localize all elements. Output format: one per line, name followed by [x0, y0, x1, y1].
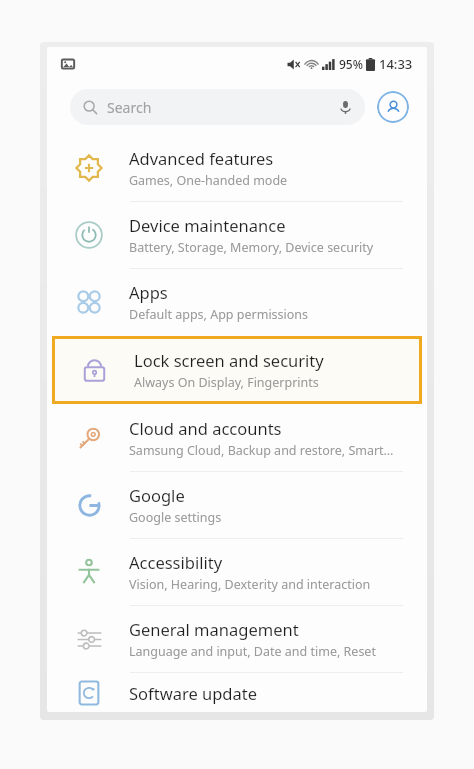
other: Voice search — [338, 100, 353, 115]
button[interactable]: Advanced features — [47, 135, 427, 201]
staticText: Search — [107, 98, 152, 117]
staticText: Lock screen and security — [134, 349, 324, 371]
staticText: Advanced features — [129, 147, 274, 169]
staticText: 95% — [339, 56, 363, 72]
staticText: Software update — [129, 682, 257, 704]
button[interactable]: Account — [377, 91, 409, 123]
button[interactable]: Device maintenance — [47, 202, 427, 268]
staticText: Always On Display, Fingerprints — [134, 374, 319, 391]
button[interactable]: Lock screen and security — [52, 336, 422, 404]
staticText: Device maintenance — [129, 214, 286, 236]
button[interactable]: Accessibility — [47, 539, 427, 605]
staticText: Samsung Cloud, Backup and restore, Smart… — [129, 442, 394, 459]
button[interactable]: Apps — [47, 269, 427, 335]
staticText: Google settings — [129, 509, 222, 526]
button[interactable]: Cloud and accounts — [47, 405, 427, 471]
staticText: Google — [129, 484, 185, 506]
button[interactable]: General management — [47, 606, 427, 672]
staticText: Games, One-handed mode — [129, 172, 288, 189]
button[interactable]: Software update — [47, 673, 427, 712]
staticText: General management — [129, 618, 299, 640]
button[interactable]: Search — [70, 89, 365, 125]
button[interactable]: Google — [47, 472, 427, 538]
staticText: 14:33 — [379, 55, 413, 73]
staticText: Battery, Storage, Memory, Device securit… — [129, 239, 374, 256]
staticText: Vision, Hearing, Dexterity and interacti… — [129, 576, 371, 593]
staticText: Cloud and accounts — [129, 417, 282, 439]
staticText: Accessibility — [129, 551, 223, 573]
staticText: Language and input, Date and time, Reset — [129, 643, 376, 660]
staticText: Apps — [129, 281, 168, 303]
staticText: Default apps, App permissions — [129, 306, 309, 323]
